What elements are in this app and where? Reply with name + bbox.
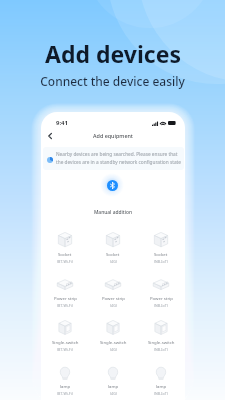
staticText: (4G) — [110, 347, 117, 352]
staticText: lamp — [108, 383, 119, 389]
staticText: Power strip — [102, 295, 125, 301]
staticText: (BT-Wi-Fi) — [57, 391, 73, 396]
staticText: Socket — [106, 251, 120, 257]
staticText: lamp — [60, 383, 71, 389]
staticText: (NB-IoT) — [154, 347, 168, 352]
staticText: (BT-Wi-Fi) — [57, 347, 73, 352]
staticText: Socket — [154, 251, 168, 257]
button[interactable]: Power strip — [137, 273, 185, 317]
staticText: (NB-IoT) — [154, 391, 168, 396]
staticText: lamp — [156, 383, 167, 389]
button[interactable]: Single-switch — [137, 317, 185, 361]
staticText: Single-switch — [52, 339, 79, 345]
staticText: (4G) — [110, 303, 117, 308]
button[interactable]: Socket — [137, 229, 185, 273]
staticText: Connect the device easily — [40, 73, 185, 89]
button[interactable]: Single-switch — [89, 317, 137, 361]
staticText: (BT-Wi-Fi) — [57, 259, 73, 264]
button[interactable]: lamp — [41, 361, 89, 400]
staticText: Socket — [58, 251, 72, 257]
staticText: Single-switch — [100, 339, 127, 345]
button[interactable]: Power strip — [41, 273, 89, 317]
staticText: (4G) — [110, 259, 117, 264]
staticText: Single-switch — [148, 339, 175, 345]
staticText: Add equipment — [41, 132, 185, 139]
button[interactable]: lamp — [137, 361, 185, 400]
staticText: Nearby devices are being searched. Pleas… — [56, 151, 183, 166]
button[interactable]: Back — [44, 130, 56, 142]
staticText: Power strip — [54, 295, 77, 301]
staticText: (BT-Wi-Fi) — [57, 303, 73, 308]
button[interactable]: Single-switch — [41, 317, 89, 361]
staticText: (4G) — [110, 391, 117, 396]
staticText: (NB-IoT) — [154, 303, 168, 308]
button[interactable]: Power strip — [89, 273, 137, 317]
staticText: (NB-IoT) — [154, 259, 168, 264]
staticText: 9:41 — [56, 119, 68, 127]
button[interactable]: Socket — [89, 229, 137, 273]
button[interactable]: Bluetooth search — [107, 180, 118, 191]
button[interactable]: lamp — [89, 361, 137, 400]
button[interactable]: Socket — [41, 229, 89, 273]
staticText: Power strip — [150, 295, 173, 301]
staticText: Manual addition — [41, 209, 185, 216]
staticText: Add devices — [45, 38, 181, 69]
